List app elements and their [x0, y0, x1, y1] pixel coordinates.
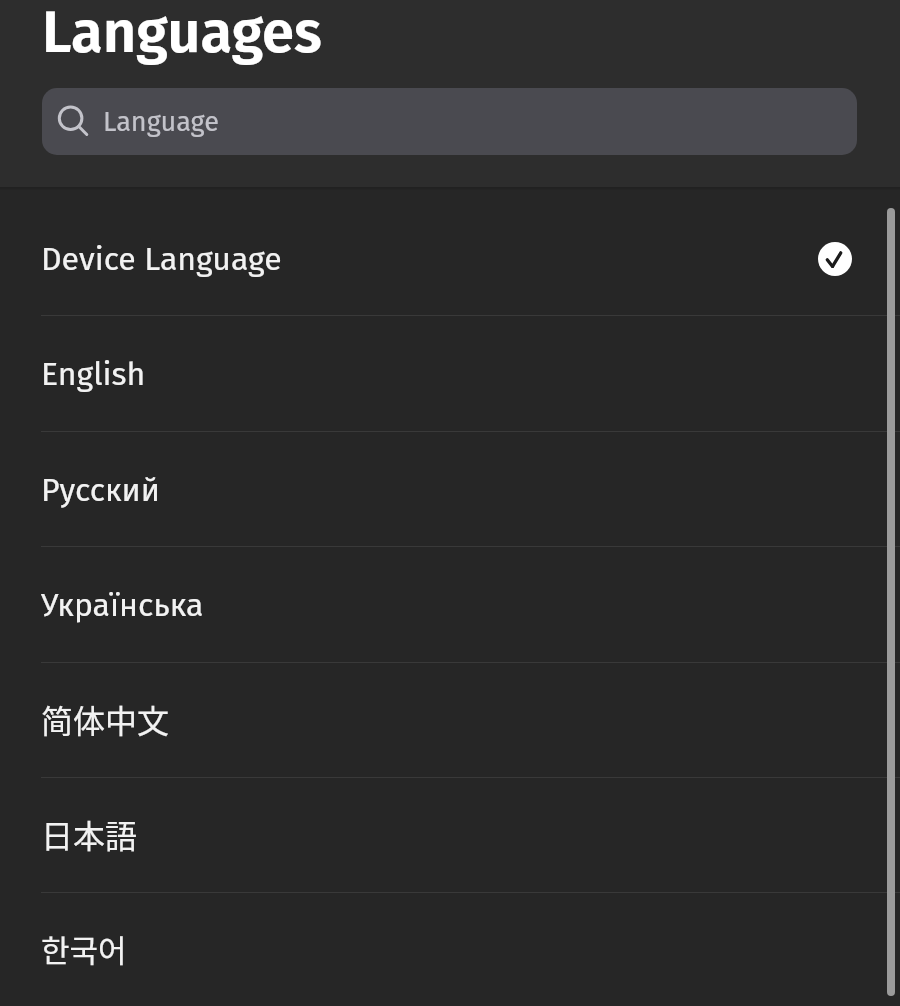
button[interactable]: English [0, 316, 900, 432]
button[interactable]: Українська [0, 547, 900, 663]
staticText: 简体中文 [41, 696, 170, 742]
staticText: Device Language [41, 240, 282, 278]
staticText: Русский [41, 471, 161, 509]
other: Selected language [818, 242, 852, 276]
button[interactable]: 日本語 [0, 778, 900, 893]
button[interactable]: 한국어 [0, 893, 900, 1006]
staticText: Language [103, 106, 219, 138]
button[interactable]: Device Language [0, 201, 900, 316]
staticText: Languages [42, 0, 322, 68]
button[interactable]: Русский [0, 432, 900, 547]
staticText: 日本語 [41, 811, 138, 857]
staticText: 한국어 [41, 926, 127, 971]
button[interactable]: 简体中文 [0, 663, 900, 778]
button[interactable]: Language [42, 88, 857, 155]
staticText: Українська [41, 586, 204, 624]
staticText: English [41, 355, 146, 393]
